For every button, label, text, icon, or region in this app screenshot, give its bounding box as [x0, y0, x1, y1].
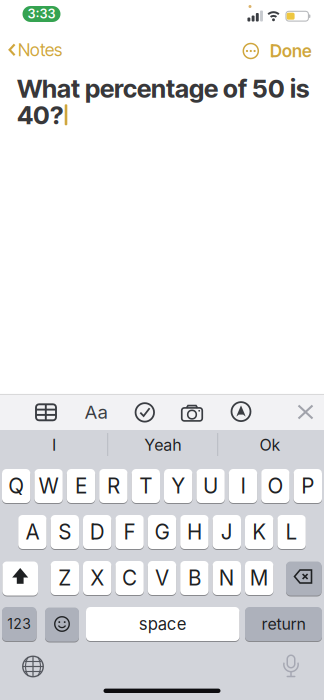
staticText: Y: [171, 473, 185, 498]
staticText: 3:33: [27, 6, 55, 22]
button[interactable]: N: [213, 560, 241, 595]
button[interactable]: Y: [164, 468, 192, 503]
button[interactable]: L: [277, 514, 306, 549]
staticText: V: [155, 565, 169, 590]
button[interactable]: R: [99, 468, 128, 503]
staticText: H: [187, 519, 202, 544]
staticText: T: [139, 473, 152, 498]
button[interactable]: M: [245, 560, 273, 595]
staticText: U: [203, 473, 218, 498]
button[interactable]: T: [132, 468, 160, 503]
button[interactable]: K: [245, 514, 273, 549]
staticText: O: [267, 473, 283, 498]
staticText: M: [250, 565, 269, 590]
staticText: I: [240, 473, 245, 498]
button[interactable]: 123: [2, 606, 36, 641]
staticText: E: [75, 473, 87, 498]
button[interactable]: [230, 401, 252, 423]
button[interactable]: Notes: [8, 37, 72, 63]
button[interactable]: U: [196, 468, 225, 503]
button[interactable]: [134, 401, 156, 423]
button[interactable]: O: [261, 468, 290, 503]
staticText: R: [107, 473, 120, 498]
staticText: Aa: [84, 401, 107, 423]
staticText: N: [219, 565, 235, 590]
button[interactable]: Z: [51, 560, 79, 595]
button[interactable]: P: [294, 468, 322, 503]
staticText: Done: [270, 40, 312, 61]
staticText: B: [188, 565, 201, 590]
button[interactable]: space: [86, 606, 239, 641]
staticText: Notes: [18, 39, 62, 60]
staticText: G: [154, 519, 169, 544]
staticText: 123: [7, 615, 31, 632]
button[interactable]: V: [148, 560, 176, 595]
button[interactable]: A: [18, 514, 47, 549]
button[interactable]: Ok: [220, 429, 320, 461]
staticText: I: [52, 435, 56, 455]
button[interactable]: J: [213, 514, 241, 549]
button[interactable]: I: [4, 429, 104, 461]
button[interactable]: [34, 402, 58, 422]
button[interactable]: C: [115, 560, 144, 595]
staticText: space: [139, 614, 187, 634]
staticText: Q: [8, 473, 24, 498]
button[interactable]: E: [67, 468, 95, 503]
staticText: W: [39, 473, 59, 498]
staticText: S: [58, 519, 71, 544]
button[interactable]: W: [34, 468, 63, 503]
staticText: L: [286, 519, 298, 544]
button[interactable]: Yeah: [113, 429, 213, 461]
button[interactable]: [240, 40, 262, 62]
button[interactable]: F: [115, 514, 144, 549]
button[interactable]: I: [229, 468, 257, 503]
staticText: C: [122, 565, 137, 590]
button[interactable]: return: [245, 606, 322, 641]
button[interactable]: S: [51, 514, 79, 549]
button[interactable]: Q: [2, 468, 30, 503]
button[interactable]: [45, 607, 79, 642]
staticText: What percentage of 50 is: [17, 73, 309, 104]
staticText: D: [90, 519, 105, 544]
button[interactable]: [2, 561, 38, 596]
button[interactable]: Done: [261, 38, 321, 64]
button[interactable]: X: [83, 560, 111, 595]
button[interactable]: B: [180, 560, 209, 595]
button[interactable]: [279, 654, 303, 680]
button[interactable]: [181, 401, 203, 423]
button[interactable]: G: [148, 514, 176, 549]
staticText: X: [90, 565, 104, 590]
button[interactable]: Aa: [83, 402, 109, 422]
button[interactable]: [286, 561, 322, 596]
staticText: F: [124, 519, 136, 544]
button[interactable]: D: [83, 514, 111, 549]
staticText: K: [252, 519, 266, 544]
staticText: Ok: [259, 435, 280, 455]
staticText: return: [261, 614, 305, 634]
staticText: Yeah: [144, 435, 181, 455]
staticText: P: [301, 473, 314, 498]
staticText: J: [221, 519, 233, 544]
staticText: 40?: [17, 100, 63, 130]
staticText: A: [25, 519, 39, 544]
button[interactable]: H: [180, 514, 209, 549]
button[interactable]: [21, 654, 45, 678]
button[interactable]: [297, 404, 314, 420]
staticText: Z: [58, 565, 71, 590]
